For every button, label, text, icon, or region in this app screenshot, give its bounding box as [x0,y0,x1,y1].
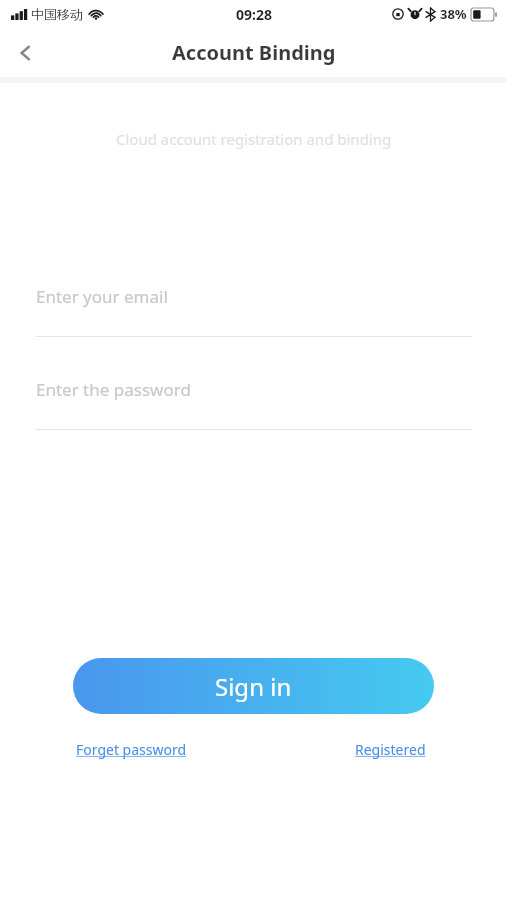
staticText: Enter your email [36,285,168,308]
button[interactable]: Registered [355,739,426,760]
button[interactable]: Back [0,28,52,77]
staticText: Cloud account registration and binding [116,129,392,149]
staticText: Forget password [76,740,187,759]
button[interactable]: Sign in [73,658,434,714]
staticText: Registered [355,740,426,759]
staticText: 中国移动 [31,6,83,22]
staticText: Sign in [215,670,292,703]
staticText: 09:28 [236,5,272,24]
staticText: 38% [440,5,467,23]
button[interactable]: Enter the password [0,369,507,409]
button[interactable]: Forget password [76,739,187,760]
staticText: Account Binding [172,39,336,66]
button[interactable]: Enter your email [0,276,507,316]
staticText: Enter the password [36,378,191,401]
